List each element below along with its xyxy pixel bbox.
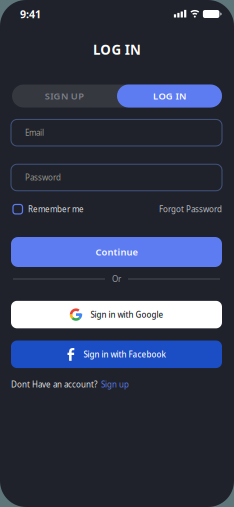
staticText: SIGN UP <box>45 90 84 102</box>
staticText: 9:41 <box>20 7 41 21</box>
staticText: Remember me <box>28 204 84 214</box>
button[interactable]: LOG IN <box>117 84 222 107</box>
staticText: Forgot Password <box>159 204 222 214</box>
button[interactable]: Sign up <box>101 379 129 390</box>
staticText: Sign in with Facebook <box>83 349 165 360</box>
button[interactable]: SIGN UP <box>12 84 117 107</box>
textField[interactable]: Password <box>25 172 222 183</box>
button[interactable]: Remember me <box>11 204 84 214</box>
staticText: Password <box>25 172 61 183</box>
staticText: Sign in with Google <box>90 309 163 320</box>
staticText: Or <box>112 274 121 284</box>
staticText: LOG IN <box>93 41 141 58</box>
button[interactable]: Sign in with Facebook <box>11 341 222 368</box>
textField[interactable]: Email <box>25 127 222 138</box>
staticText: LOG IN <box>153 90 186 102</box>
staticText: Sign up <box>101 379 129 390</box>
staticText: Continue <box>95 246 137 258</box>
button[interactable]: Forgot Password <box>159 204 222 214</box>
staticText: Dont Have an account? <box>11 379 97 390</box>
staticText: Email <box>25 127 44 138</box>
button[interactable]: Sign in with Google <box>11 301 222 328</box>
button[interactable]: Continue <box>11 237 222 267</box>
